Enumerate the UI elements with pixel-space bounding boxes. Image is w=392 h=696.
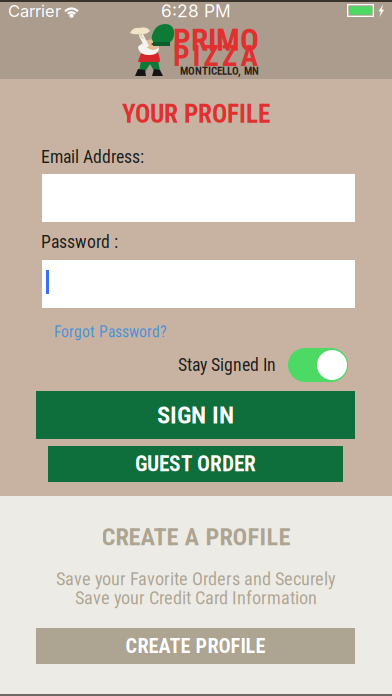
staticText: PRIMO	[173, 22, 259, 58]
staticText: GUEST ORDER	[135, 451, 256, 476]
staticText: Password :	[41, 232, 118, 252]
button[interactable]: Stay Signed In	[288, 348, 348, 382]
staticText: CREATE A PROFILE	[101, 523, 290, 551]
staticText: 6:28 PM	[161, 0, 231, 21]
staticText: Save your Favorite Orders and Securely	[56, 568, 336, 590]
staticText: Stay Signed In	[178, 355, 276, 375]
button[interactable]: GUEST ORDER	[48, 446, 343, 482]
staticText: Forgot Password?	[54, 323, 167, 341]
staticText: MONTICELLO, MN	[180, 64, 259, 77]
staticText: PIZZA	[173, 39, 258, 73]
button[interactable]: SIGN IN	[36, 391, 355, 439]
button[interactable]: CREATE PROFILE	[36, 628, 355, 664]
staticText: Carrier	[8, 1, 61, 21]
staticText: YOUR PROFILE	[122, 99, 270, 129]
staticText: Save your Credit Card Information	[75, 587, 317, 609]
staticText: Email Address:	[41, 147, 144, 167]
button[interactable]: Forgot Password?	[54, 323, 184, 341]
staticText: CREATE PROFILE	[125, 634, 265, 658]
staticText: SIGN IN	[157, 400, 234, 429]
